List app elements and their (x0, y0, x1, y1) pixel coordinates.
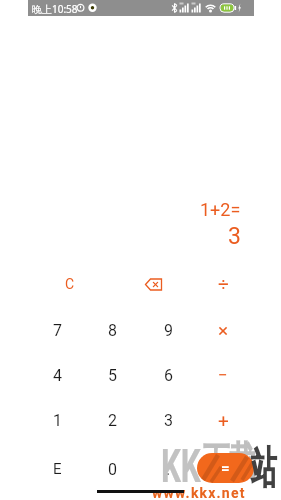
staticText: 7 (53, 321, 62, 340)
button[interactable]: E (33, 449, 81, 489)
button[interactable] (130, 264, 178, 304)
button[interactable]: = (197, 453, 254, 483)
staticText: 4 (53, 366, 62, 385)
button[interactable]: 9 (144, 310, 192, 350)
staticText: 0 (108, 460, 117, 479)
staticText: . (166, 460, 171, 479)
button[interactable]: 8 (88, 310, 136, 350)
staticText: 6 (164, 366, 173, 385)
button[interactable]: 0 (88, 449, 136, 489)
staticText: 3 (228, 223, 241, 250)
button[interactable]: 5 (88, 355, 136, 395)
staticText: 8 (108, 321, 117, 340)
button[interactable]: + (199, 400, 247, 440)
staticText: × (218, 319, 229, 341)
staticText: 3 (164, 411, 173, 430)
button[interactable]: − (199, 355, 247, 395)
staticText: = (221, 459, 230, 477)
button[interactable]: C (46, 264, 94, 304)
staticText: 2 (108, 411, 117, 430)
button[interactable]: 2 (88, 400, 136, 440)
button[interactable]: 3 (144, 400, 192, 440)
staticText: 9 (164, 321, 173, 340)
button[interactable]: 4 (33, 355, 81, 395)
staticText: + (218, 409, 229, 431)
button[interactable]: ÷ (199, 264, 247, 304)
staticText: 晚上10:58 (32, 2, 78, 16)
button[interactable]: 1 (33, 400, 81, 440)
staticText: 1+2= (200, 199, 241, 220)
staticText: 1 (53, 411, 62, 430)
staticText: − (218, 365, 228, 385)
staticText: C (65, 276, 75, 292)
button[interactable]: . (144, 449, 192, 489)
staticText: 下载 (203, 437, 255, 490)
staticText: 5 (108, 366, 117, 385)
staticText: 站 (251, 441, 276, 496)
staticText: ÷ (218, 273, 229, 295)
staticText: E (53, 460, 62, 478)
button[interactable]: × (199, 310, 247, 350)
button[interactable]: 6 (144, 355, 192, 395)
button[interactable]: 7 (33, 310, 81, 350)
staticText: www.kkx.net (152, 485, 246, 500)
staticText: KK (161, 439, 201, 493)
